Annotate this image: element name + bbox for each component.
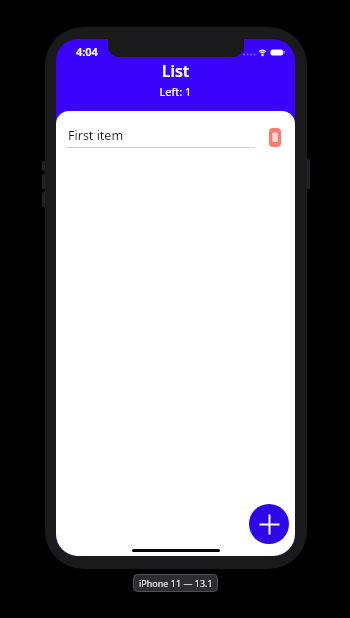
staticText: List	[56, 60, 295, 82]
button[interactable]: First item	[64, 123, 282, 151]
button[interactable]	[269, 128, 281, 147]
staticText: Left: 1	[56, 84, 295, 99]
staticText: iPhone 11 — 13.1	[139, 577, 213, 589]
staticText: First item	[68, 127, 124, 144]
button[interactable]	[249, 504, 289, 544]
staticText: 4:04	[76, 44, 98, 58]
